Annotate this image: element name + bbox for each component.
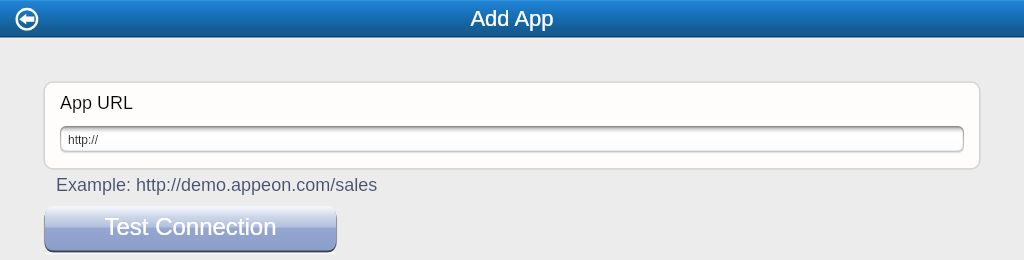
button[interactable]: Test Connection <box>45 205 336 257</box>
staticText: Example: http://demo.appeon.com/sales <box>56 175 378 195</box>
staticText: http:// <box>68 133 99 146</box>
staticText: Add App <box>470 6 554 31</box>
button[interactable]: Back <box>12 4 42 34</box>
staticText: App URL <box>60 93 134 113</box>
button[interactable]: http:// <box>60 126 964 152</box>
staticText: Test Connection <box>45 213 336 240</box>
